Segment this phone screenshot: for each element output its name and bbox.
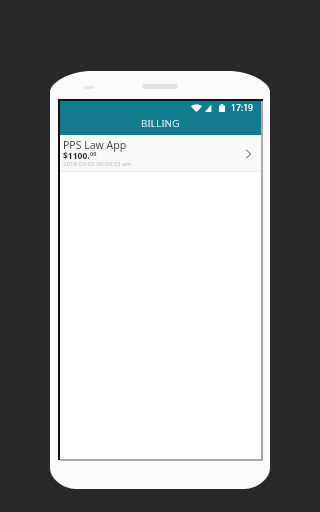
- staticText: 2018-03-02 06:50:33 am: [63, 159, 132, 167]
- staticText: 00: [90, 150, 97, 157]
- staticText: 17:19: [231, 102, 253, 114]
- button[interactable]: PPS Law App: [60, 135, 261, 171]
- other: Open invoice details: [246, 148, 256, 160]
- staticText: $1100.: [63, 150, 90, 162]
- staticText: PPS Law App: [63, 138, 127, 152]
- staticText: BILLING: [141, 117, 180, 130]
